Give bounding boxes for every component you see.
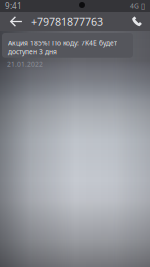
staticText: ▯	[141, 1, 145, 11]
staticText: 4G	[130, 2, 139, 10]
button[interactable]: Call	[128, 12, 146, 31]
button[interactable]: Back	[4, 12, 28, 31]
staticText: Акция 185%! По коду: 7K4E будет доступен…	[8, 38, 117, 56]
staticText: 9:41	[5, 1, 22, 11]
staticText: +79781877763	[31, 14, 103, 29]
staticText: 21.01.2022	[7, 60, 43, 69]
